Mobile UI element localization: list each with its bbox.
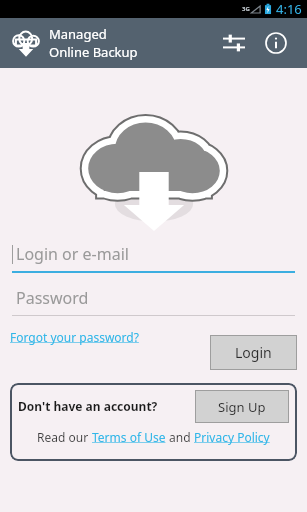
staticText: and (166, 429, 194, 445)
button[interactable]: Login or e-mail (12, 243, 295, 273)
button[interactable]: Privacy Policy (194, 429, 270, 445)
button[interactable]: Terms of Use (92, 429, 166, 445)
staticText: Managed (49, 25, 107, 43)
staticText: Don't have an account? (18, 398, 158, 414)
button[interactable]: Forgot your password? (10, 329, 139, 345)
staticText: Read our (37, 429, 92, 445)
staticText: Password (16, 287, 89, 309)
button[interactable]: Login (210, 335, 297, 370)
staticText: Sign Up (218, 398, 266, 416)
button[interactable]: Settings (215, 24, 253, 62)
button[interactable]: Password (12, 287, 295, 316)
button[interactable]: Info (257, 24, 295, 62)
button[interactable]: Sign Up (195, 390, 289, 423)
staticText: 4:16 (276, 0, 302, 18)
staticText: Login (235, 343, 272, 362)
staticText: Online Backup (49, 43, 138, 61)
staticText: 3G (242, 5, 250, 13)
staticText: Login or e-mail (16, 243, 129, 265)
